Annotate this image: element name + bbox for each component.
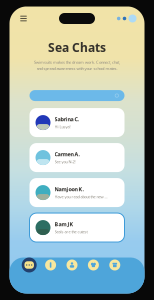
button[interactable]: Compose <box>40 259 61 270</box>
staticText: Sea Chats <box>48 39 106 55</box>
staticText: Namjoon K. <box>54 186 83 193</box>
button[interactable]: Menu <box>17 13 29 24</box>
staticText: Seals are the cutest <box>54 229 87 234</box>
staticText: See you N-2! <box>54 159 75 164</box>
button[interactable]: Carmen A. <box>29 143 124 172</box>
staticText: Sabrina C. <box>54 116 78 123</box>
button[interactable]: Settings <box>117 17 120 20</box>
button[interactable]: Notifications <box>123 17 126 20</box>
button[interactable]: Contacts <box>61 259 83 270</box>
button[interactable] <box>29 90 124 101</box>
button[interactable]: Favorites <box>83 259 104 270</box>
staticText: and spread awareness with your school ma… <box>36 66 117 71</box>
staticText: Hi Lusya! <box>54 124 70 129</box>
staticText: Bam JK <box>54 221 73 228</box>
button[interactable]: Bam JK <box>29 213 124 242</box>
staticText: Carmen A. <box>54 151 79 158</box>
staticText: Have you read about the new ... <box>54 194 107 199</box>
button[interactable]: Profile <box>128 14 136 22</box>
button[interactable]: Sabrina C. <box>29 108 124 137</box>
button[interactable]: Chats <box>18 257 40 272</box>
button[interactable]: Home <box>104 259 125 270</box>
button[interactable]: Namjoon K. <box>29 178 124 207</box>
staticText: Swimsuits makes the dream work. Connect,… <box>34 59 120 65</box>
